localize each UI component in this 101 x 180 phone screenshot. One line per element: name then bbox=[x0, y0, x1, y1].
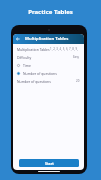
button[interactable]: Start bbox=[19, 159, 79, 167]
button[interactable]: Number of questions bbox=[17, 69, 80, 77]
button[interactable]: Time bbox=[17, 61, 80, 69]
staticText: Difficulty bbox=[17, 55, 32, 60]
staticText: Number of questions bbox=[23, 71, 57, 76]
staticText: Start bbox=[45, 161, 54, 166]
button[interactable]: Number of questions bbox=[17, 77, 80, 85]
button[interactable]: Back bbox=[13, 34, 84, 44]
button[interactable]: Multiplication Tables bbox=[17, 45, 80, 53]
button[interactable]: Difficulty bbox=[17, 53, 80, 61]
staticText: Multiplication Tables bbox=[25, 36, 69, 42]
staticText: Number of questions bbox=[17, 79, 51, 84]
staticText: Practice Tables bbox=[0, 8, 101, 16]
staticText: 20 bbox=[76, 79, 80, 83]
staticText: Easy bbox=[73, 55, 80, 59]
staticText: Time bbox=[23, 63, 31, 68]
button[interactable]: Back bbox=[13, 34, 22, 44]
staticText: Multiplication Tables bbox=[17, 47, 50, 52]
staticText: 1, 2, 3, 4, 5, 6, 7, 8, 9, 10 bbox=[50, 47, 80, 51]
